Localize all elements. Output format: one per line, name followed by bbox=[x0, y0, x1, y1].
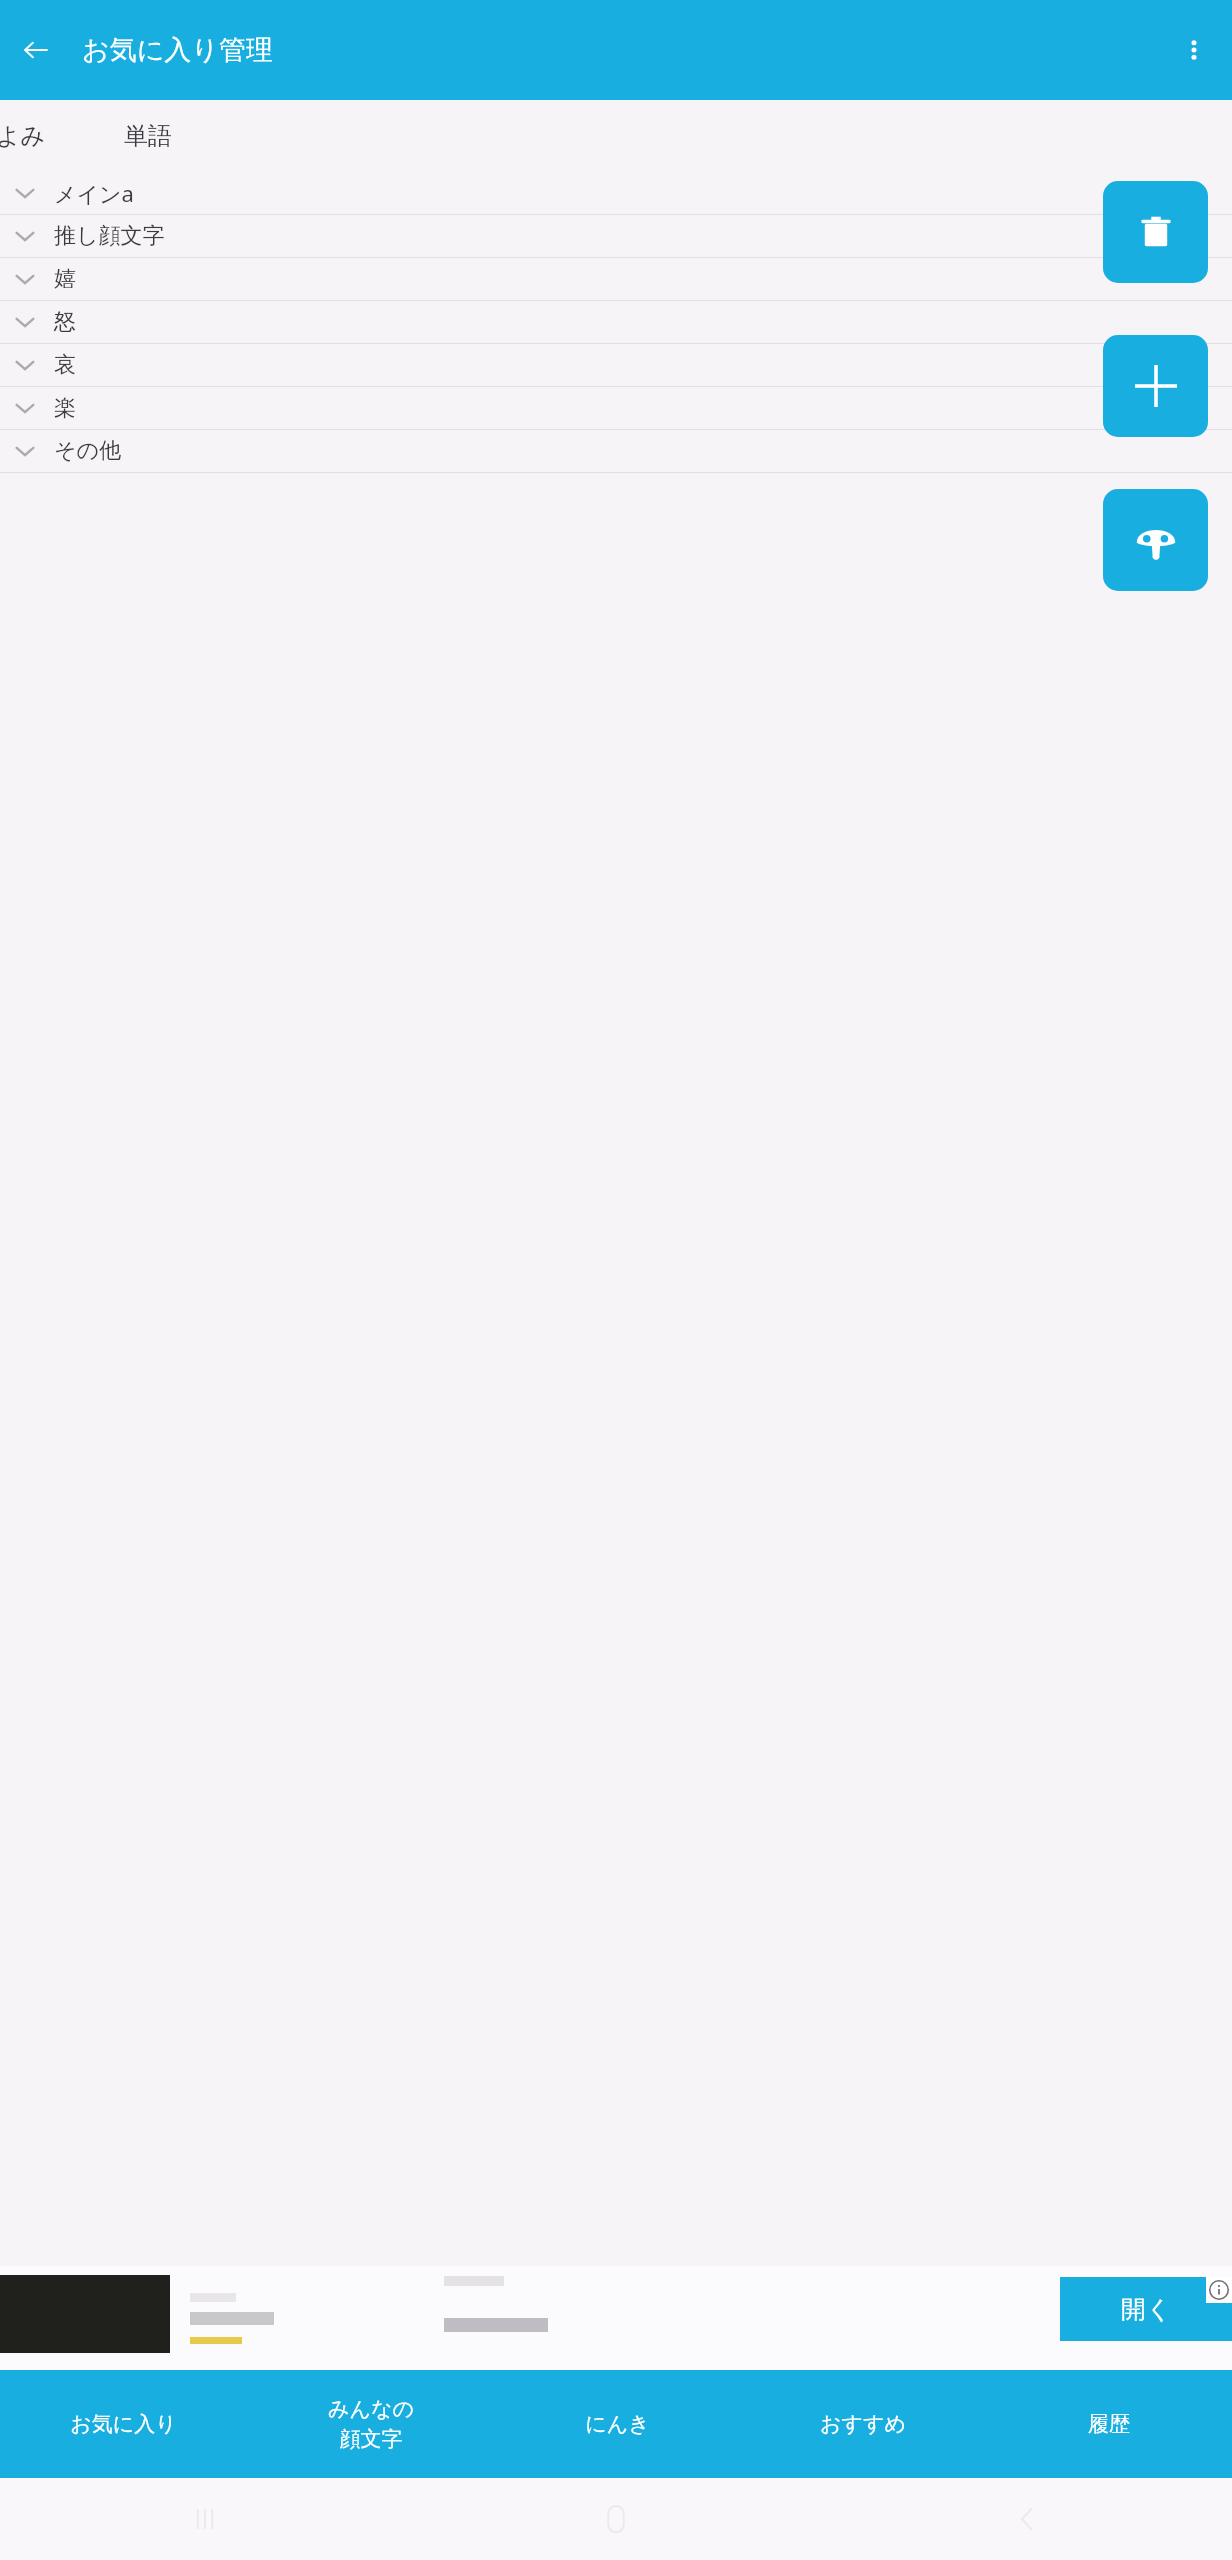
button[interactable]: Back bbox=[8, 22, 64, 78]
button[interactable]: Add bbox=[1103, 335, 1208, 437]
staticText: 単語 bbox=[124, 121, 172, 151]
button[interactable]: 哀 bbox=[0, 344, 1232, 387]
button[interactable]: みんなの 顔文字 bbox=[247, 2370, 494, 2478]
staticText: よみ bbox=[0, 121, 46, 151]
button[interactable]: Delete bbox=[1103, 181, 1208, 283]
button[interactable]: Ad info bbox=[1206, 2277, 1232, 2303]
staticText: お気に入り管理 bbox=[82, 33, 273, 67]
button[interactable]: 開く bbox=[1060, 2277, 1232, 2341]
staticText: 推し顔文字 bbox=[54, 222, 165, 250]
button[interactable]: 嬉 bbox=[0, 258, 1232, 301]
button[interactable]: Mushroom bbox=[1103, 489, 1208, 591]
button[interactable]: その他 bbox=[0, 430, 1232, 473]
staticText: 楽 bbox=[54, 394, 76, 422]
button[interactable]: メインa bbox=[0, 172, 1232, 215]
staticText: にんき bbox=[585, 2411, 650, 2437]
staticText: その他 bbox=[54, 437, 122, 465]
staticText: 履歴 bbox=[1088, 2411, 1130, 2437]
button[interactable]: 楽 bbox=[0, 387, 1232, 430]
staticText: メインa bbox=[54, 178, 134, 208]
staticText: 怒 bbox=[54, 308, 76, 336]
staticText: みんなの 顔文字 bbox=[328, 2396, 414, 2453]
button[interactable]: More options bbox=[1166, 22, 1222, 78]
button[interactable]: おすすめ bbox=[740, 2370, 986, 2478]
staticText: 開く bbox=[1121, 2294, 1172, 2325]
button[interactable]: 履歴 bbox=[986, 2370, 1232, 2478]
button[interactable]: 怒 bbox=[0, 301, 1232, 344]
button[interactable]: お気に入り bbox=[0, 2370, 247, 2478]
button[interactable]: にんき bbox=[494, 2370, 740, 2478]
staticText: おすすめ bbox=[820, 2411, 906, 2437]
button[interactable]: 推し顔文字 bbox=[0, 215, 1232, 258]
staticText: 嬉 bbox=[54, 265, 76, 293]
staticText: お気に入り bbox=[70, 2411, 177, 2437]
staticText: 哀 bbox=[54, 351, 76, 379]
